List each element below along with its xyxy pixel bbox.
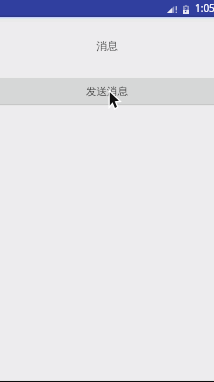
staticText: 发送消息 (86, 85, 128, 98)
staticText: 1:05 (195, 1, 214, 15)
staticText: 消息 (96, 39, 118, 53)
other: Battery (183, 5, 189, 14)
button[interactable]: 发送消息 (0, 78, 214, 104)
other: Mobile signal: no service (167, 6, 177, 13)
